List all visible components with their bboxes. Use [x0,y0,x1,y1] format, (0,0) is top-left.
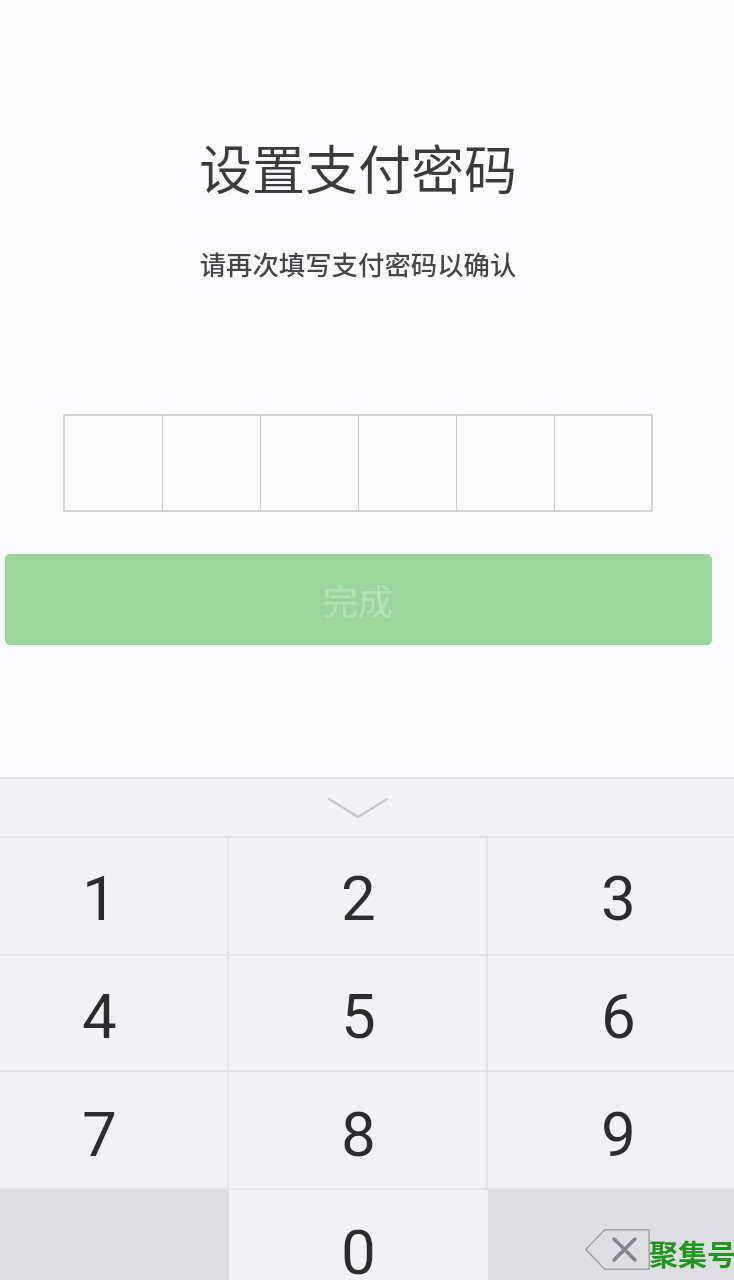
staticText: 请再次填写支付密码以确认 [0,244,725,282]
staticText: 7 [82,1098,117,1171]
button[interactable]: 3 [488,837,734,955]
staticText: 6 [601,980,636,1053]
staticText: 聚集号 [649,1232,734,1274]
staticText: 4 [82,980,117,1053]
button[interactable]: Password digit 6 [555,415,652,511]
button[interactable]: Hide keyboard [0,778,734,837]
staticText: 设置支付密码 [0,129,725,206]
staticText: 5 [341,980,376,1053]
button[interactable]: 5 [228,955,488,1071]
staticText: 0 [341,1216,376,1280]
button[interactable]: 2 [228,837,488,955]
staticText: 8 [341,1098,376,1171]
button[interactable]: Backspace [488,1189,734,1280]
button[interactable]: 7 [0,1071,229,1189]
button[interactable]: 6 [488,955,734,1071]
button[interactable]: Password digit 5 [457,415,554,511]
button[interactable]: 4 [0,955,229,1071]
button[interactable]: Password digit 4 [359,415,456,511]
button[interactable]: 0 [228,1189,488,1280]
staticText: 9 [601,1098,636,1171]
button[interactable]: Password digit 3 [261,415,358,511]
button[interactable]: 8 [228,1071,488,1189]
button[interactable]: Password digit 1 [64,415,162,511]
button[interactable]: Password digit 2 [163,415,260,511]
staticText: 2 [341,862,376,935]
staticText: 1 [82,862,117,935]
button[interactable]: 1 [0,837,229,955]
button[interactable]: 9 [488,1071,734,1189]
staticText: 3 [601,862,636,935]
staticText: 完成 [323,574,394,625]
button[interactable]: 完成 [5,554,712,645]
